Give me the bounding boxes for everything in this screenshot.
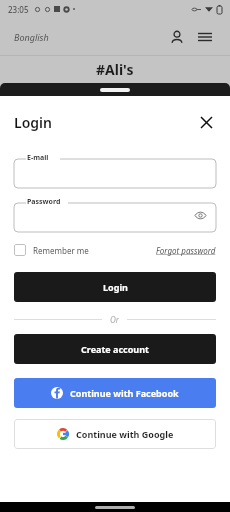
staticText: Create account (81, 343, 149, 355)
staticText: Password (27, 197, 61, 207)
button[interactable]: Continue with Google (14, 419, 216, 449)
button[interactable]: Account (166, 26, 188, 48)
staticText: 23:05 (8, 4, 29, 15)
button[interactable]: Show password (192, 207, 208, 223)
staticText: #Ali's (96, 60, 134, 79)
staticText: Login (103, 281, 128, 293)
button[interactable]: Create account (14, 334, 216, 364)
button[interactable]: Forgot password (156, 245, 216, 256)
staticText: Continue with Facebook (70, 387, 179, 399)
staticText: Forgot password (156, 245, 216, 256)
button[interactable]: Close (196, 112, 216, 132)
button[interactable]: Login (14, 272, 216, 302)
staticText: Login (14, 113, 52, 132)
button[interactable]: Continue with Facebook (14, 378, 216, 408)
staticText: Continue with Google (76, 428, 174, 440)
staticText: Bonglish (14, 31, 49, 43)
staticText: E-mail (27, 153, 49, 163)
staticText: Or (110, 314, 119, 324)
button[interactable]: Remember me (14, 244, 89, 256)
staticText: Remember me (33, 245, 89, 256)
button[interactable]: Menu (194, 26, 216, 48)
